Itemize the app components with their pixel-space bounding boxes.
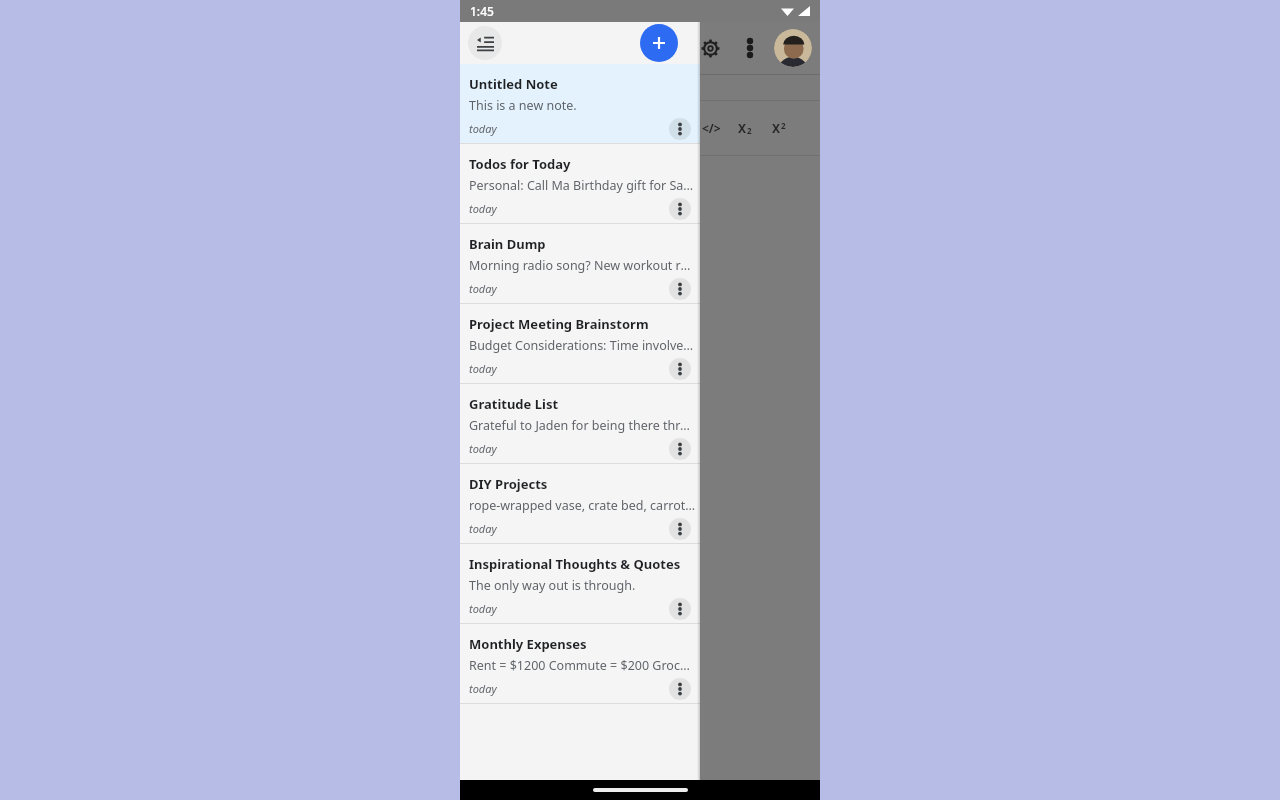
- staticText: today: [469, 361, 497, 376]
- button[interactable]: Note options: [669, 438, 691, 460]
- staticText: Rent = $1200 Commute = $200 Groce…: [469, 657, 696, 674]
- staticText: today: [469, 201, 497, 216]
- button[interactable]: Note options: [669, 198, 691, 220]
- staticText: today: [469, 681, 497, 696]
- button[interactable]: Monthly Expenses: [460, 624, 700, 703]
- staticText: This is a new note.: [469, 97, 577, 114]
- staticText: DIY Projects: [469, 475, 548, 493]
- button[interactable]: Note options: [669, 118, 691, 140]
- staticText: </>: [702, 120, 721, 136]
- staticText: today: [469, 281, 497, 296]
- button[interactable]: Collapse list: [468, 26, 502, 60]
- button[interactable]: Note options: [669, 598, 691, 620]
- staticText: Gratitude List: [469, 395, 559, 413]
- staticText: X: [738, 120, 747, 136]
- staticText: 2: [781, 120, 786, 131]
- staticText: Grateful to Jaden for being there thro…: [469, 417, 696, 434]
- staticText: today: [469, 121, 497, 136]
- staticText: today: [469, 601, 497, 616]
- staticText: Monthly Expenses: [469, 635, 587, 653]
- staticText: today: [469, 441, 497, 456]
- staticText: 2: [747, 125, 752, 136]
- staticText: The only way out is through.: [469, 577, 636, 594]
- staticText: rope-wrapped vase, crate bed, carrot j…: [469, 497, 696, 514]
- staticText: Budget Considerations: Time involved …: [469, 337, 696, 354]
- button[interactable]: Note options: [669, 358, 691, 380]
- button[interactable]: Gratitude List: [460, 384, 700, 463]
- button[interactable]: Project Meeting Brainstorm: [460, 304, 700, 383]
- button[interactable]: Settings: [690, 28, 730, 68]
- staticText: Project Meeting Brainstorm: [469, 315, 649, 333]
- staticText: Inspirational Thoughts & Quotes: [469, 555, 681, 573]
- button[interactable]: Note options: [669, 518, 691, 540]
- button[interactable]: More options: [730, 28, 770, 68]
- button[interactable]: Brain Dump: [460, 224, 700, 303]
- button[interactable]: Todos for Today: [460, 144, 700, 223]
- staticText: Untitled Note: [469, 75, 558, 93]
- staticText: Personal: Call Ma Birthday gift for Sara…: [469, 177, 696, 194]
- button[interactable]: Inspirational Thoughts & Quotes: [460, 544, 700, 623]
- staticText: Brain Dump: [469, 235, 546, 253]
- button[interactable]: Untitled Note: [460, 64, 700, 143]
- button[interactable]: Account: [774, 29, 812, 67]
- button[interactable]: New note: [640, 24, 678, 62]
- staticText: X: [772, 120, 781, 136]
- button[interactable]: DIY Projects: [460, 464, 700, 543]
- staticText: today: [469, 521, 497, 536]
- staticText: Morning radio song? New workout ro…: [469, 257, 696, 274]
- staticText: 1:45: [470, 3, 494, 19]
- button[interactable]: Note options: [669, 678, 691, 700]
- staticText: Todos for Today: [469, 155, 571, 173]
- button[interactable]: Note options: [669, 278, 691, 300]
